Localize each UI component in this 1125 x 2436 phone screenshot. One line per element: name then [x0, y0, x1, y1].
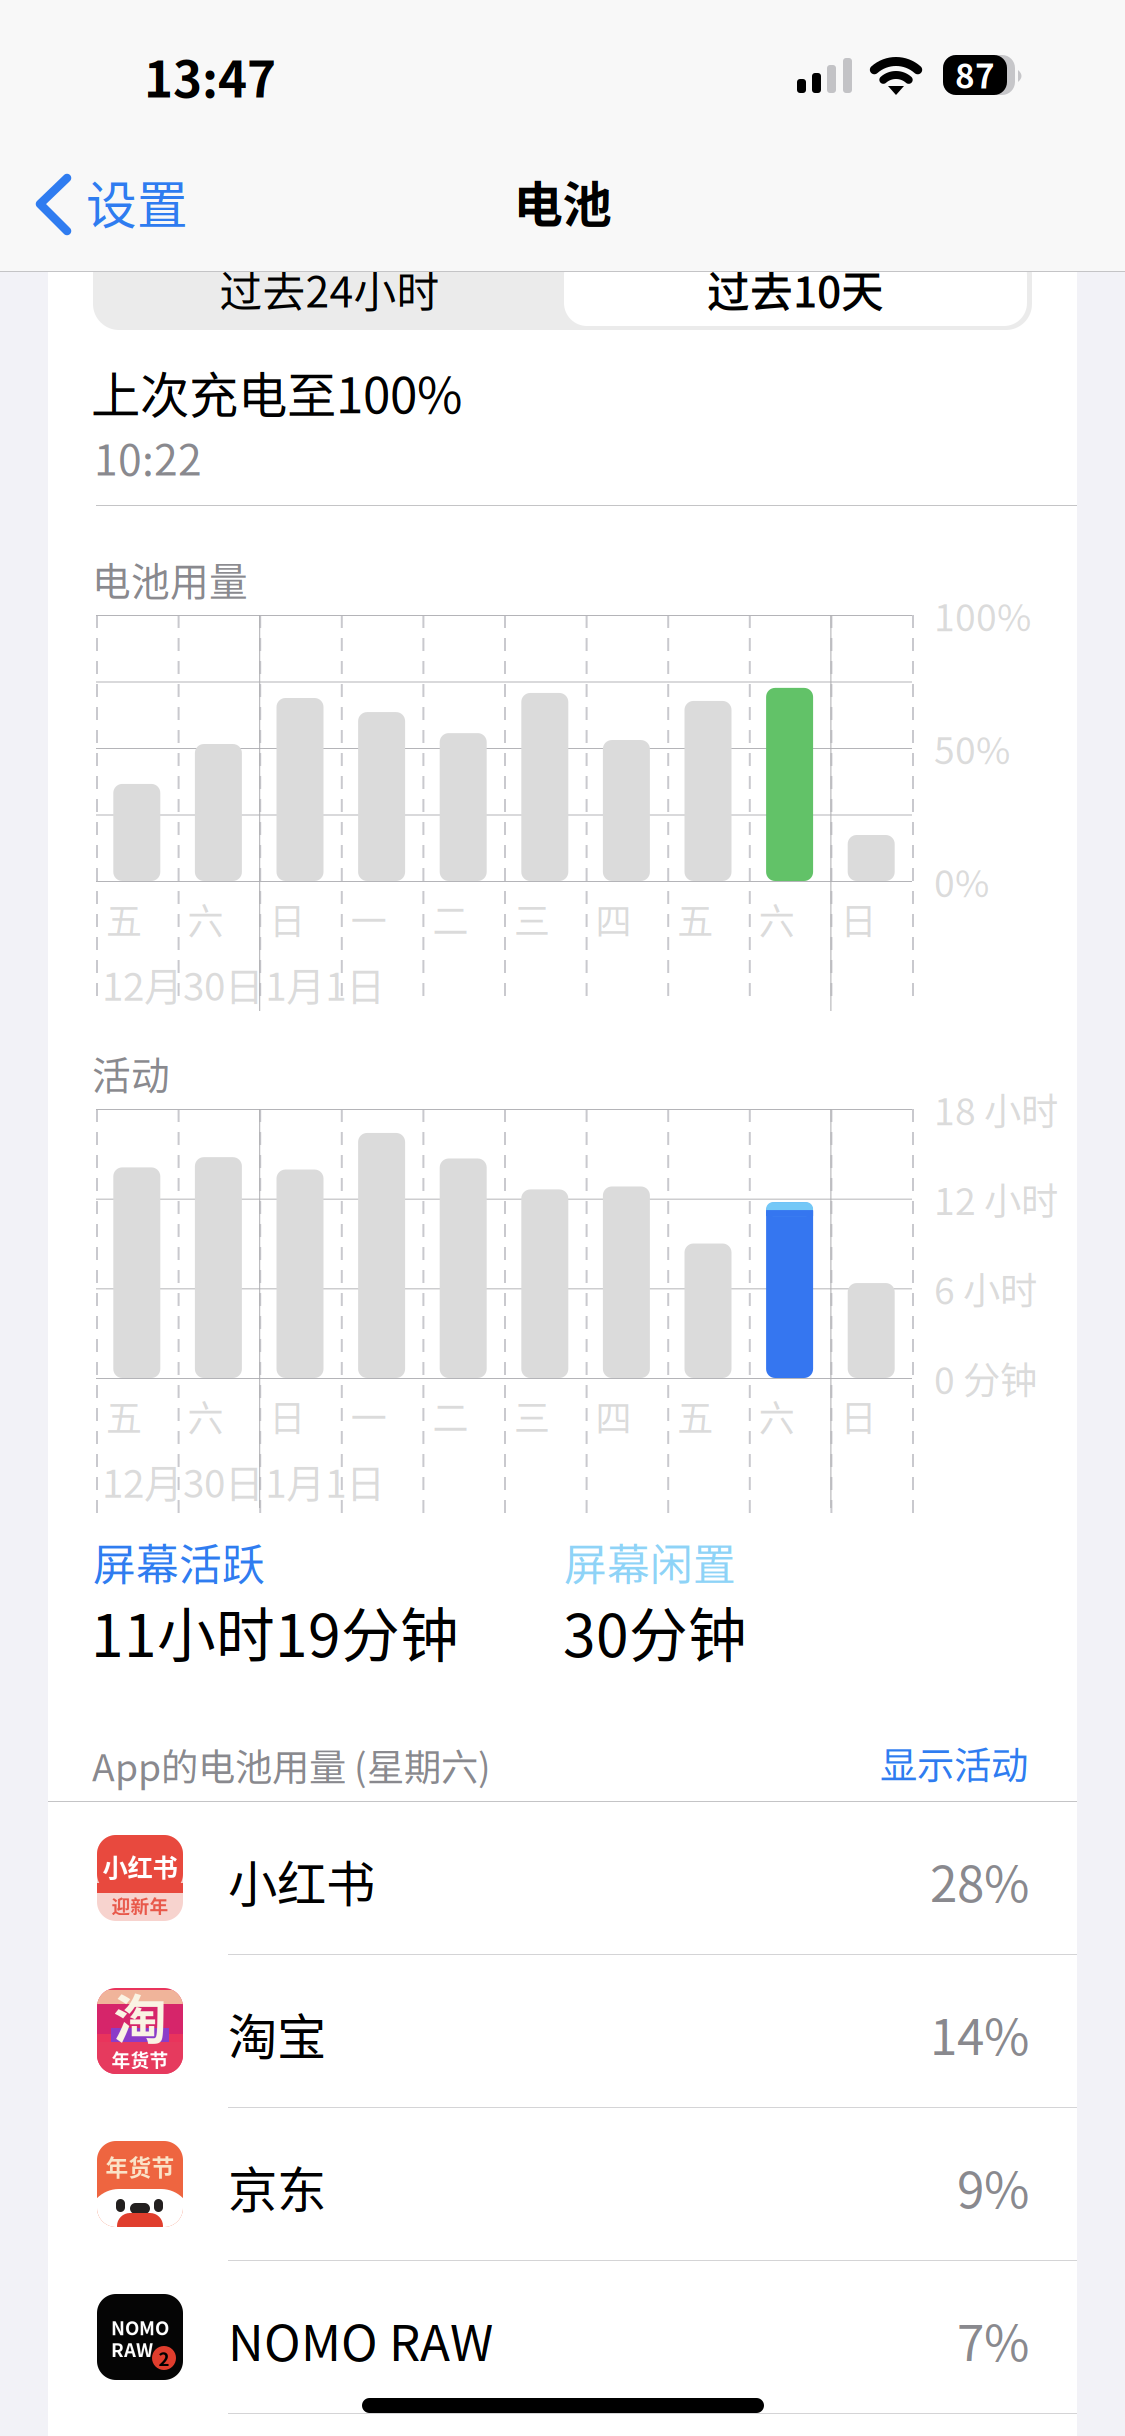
- button[interactable]: NOMO: [48, 2261, 1077, 2414]
- staticText: 日: [840, 893, 876, 945]
- staticText: 五: [677, 893, 713, 945]
- staticText: 六: [188, 1390, 224, 1442]
- staticText: 过去24小时: [219, 258, 439, 320]
- staticText: 迎新年: [111, 1891, 168, 1918]
- staticText: 2: [158, 2344, 169, 2371]
- staticText: 活动: [92, 1045, 170, 1101]
- staticText: 12月30日: [102, 1453, 264, 1509]
- button[interactable]: 小红书: [48, 1802, 1077, 1955]
- staticText: 三: [514, 893, 550, 945]
- staticText: 6 小时: [934, 1261, 1037, 1315]
- staticText: 一: [351, 1390, 387, 1442]
- staticText: 14%: [930, 1998, 1029, 2069]
- staticText: 9%: [957, 2151, 1029, 2222]
- staticText: NOMO RAW: [228, 2304, 493, 2375]
- staticText: 四: [596, 893, 632, 945]
- button[interactable]: 年货节: [48, 2108, 1077, 2261]
- staticText: RAW: [111, 2335, 153, 2362]
- button[interactable]: 过去24小时: [98, 252, 561, 326]
- staticText: 六: [759, 1390, 795, 1442]
- button[interactable]: 过去10天: [564, 252, 1027, 326]
- staticText: 设置: [86, 165, 188, 239]
- staticText: 年货节: [105, 2150, 174, 2182]
- staticText: 28%: [930, 1845, 1029, 1916]
- staticText: 五: [677, 1390, 713, 1442]
- staticText: 屏幕闲置: [564, 1531, 736, 1593]
- staticText: 100%: [934, 588, 1031, 642]
- staticText: 显示活动: [880, 1736, 1028, 1790]
- staticText: 18 小时: [934, 1082, 1058, 1136]
- staticText: 87: [955, 50, 995, 98]
- staticText: 7%: [957, 2304, 1029, 2375]
- staticText: 六: [759, 893, 795, 945]
- staticText: 五: [106, 893, 142, 945]
- staticText: 10:22: [94, 426, 202, 488]
- staticText: 淘: [113, 1977, 166, 2055]
- staticText: 11小时19分钟: [91, 1589, 459, 1674]
- staticText: 六: [188, 893, 224, 945]
- staticText: 0 分钟: [934, 1351, 1037, 1405]
- staticText: 一: [351, 893, 387, 945]
- staticText: 50%: [934, 721, 1010, 775]
- staticText: 电池用量: [92, 551, 248, 607]
- staticText: 过去10天: [707, 258, 884, 320]
- staticText: 日: [840, 1390, 876, 1442]
- staticText: App的电池用量 (星期六): [92, 1738, 491, 1792]
- staticText: 年货节: [111, 2045, 168, 2072]
- staticText: NOMO: [111, 2313, 169, 2340]
- staticText: 0%: [934, 854, 989, 908]
- staticText: 二: [432, 893, 468, 945]
- button[interactable]: 淘: [48, 1955, 1077, 2108]
- staticText: 12月30日: [102, 956, 264, 1012]
- staticText: 日: [269, 1390, 305, 1442]
- staticText: 小红书: [102, 1848, 177, 1884]
- staticText: 屏幕活跃: [93, 1531, 265, 1593]
- staticText: 四: [596, 1390, 632, 1442]
- staticText: 二: [432, 1390, 468, 1442]
- staticText: 京东: [228, 2151, 326, 2222]
- staticText: 30分钟: [563, 1589, 747, 1674]
- staticText: 12 小时: [934, 1172, 1058, 1226]
- staticText: 1月1日: [265, 956, 385, 1012]
- staticText: 淘宝: [228, 1998, 326, 2069]
- button[interactable]: 显示活动: [878, 1738, 1028, 1788]
- button[interactable]: 设置: [32, 157, 232, 247]
- staticText: 电池: [513, 165, 611, 237]
- staticText: 1月1日: [265, 1453, 385, 1509]
- staticText: 13:47: [144, 40, 276, 112]
- staticText: 小红书: [228, 1845, 375, 1916]
- staticText: 三: [514, 1390, 550, 1442]
- staticText: 上次充电至100%: [91, 356, 462, 427]
- staticText: 五: [106, 1390, 142, 1442]
- staticText: 日: [269, 893, 305, 945]
